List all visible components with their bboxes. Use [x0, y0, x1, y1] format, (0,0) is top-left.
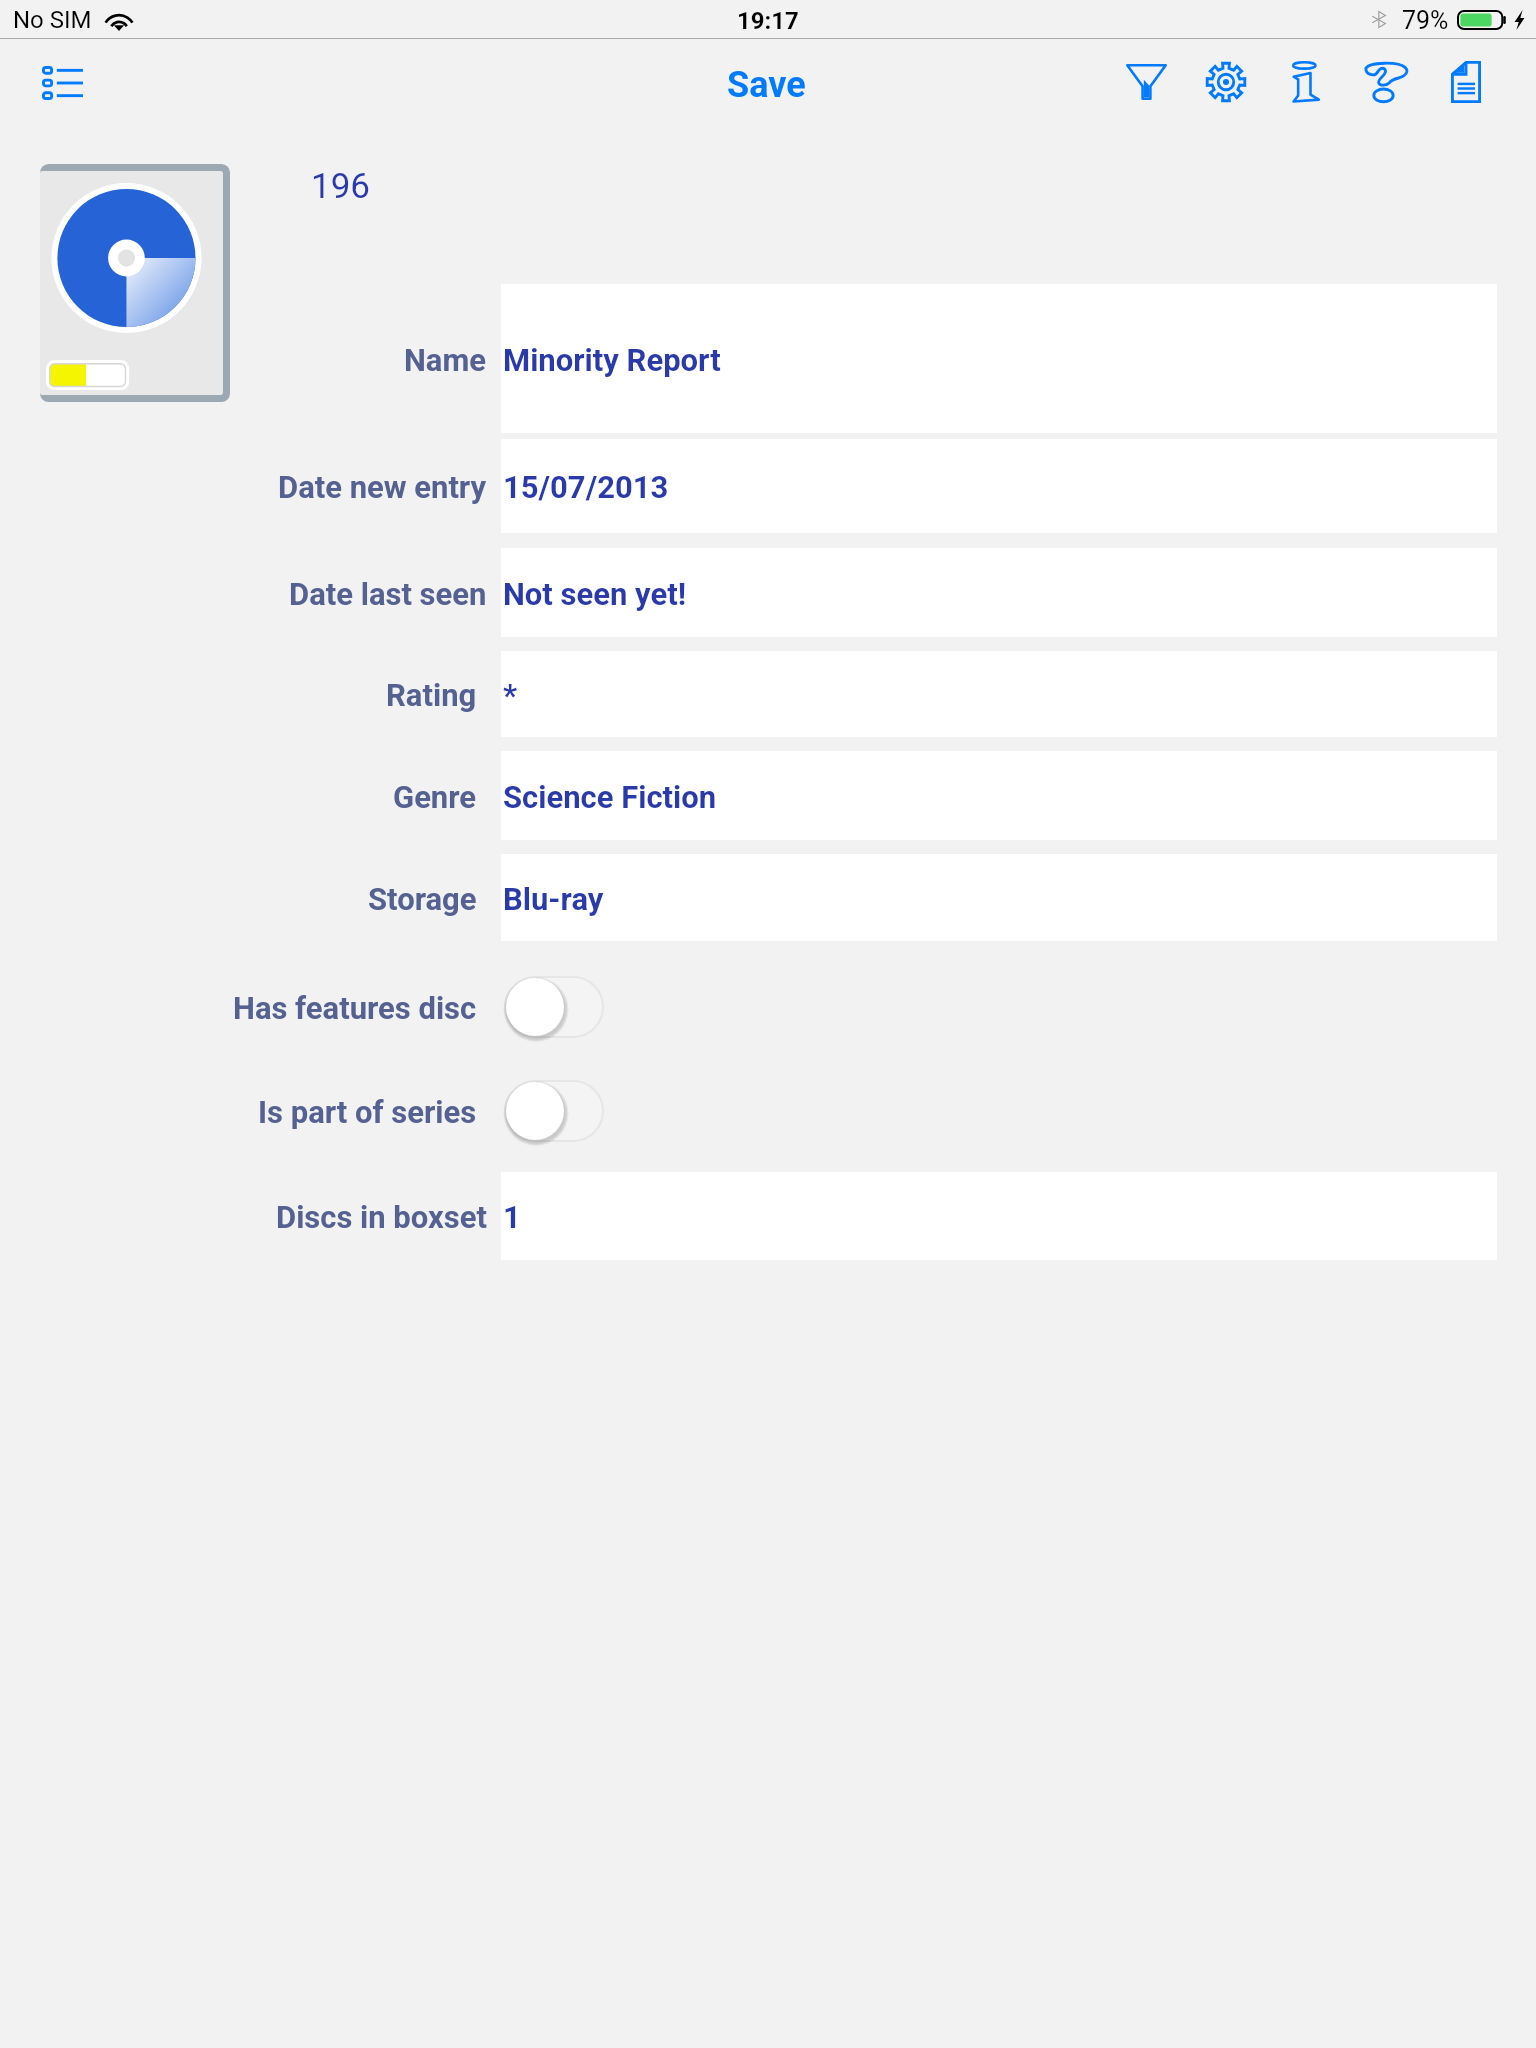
- button[interactable]: Has features disc: [504, 976, 604, 1038]
- button[interactable]: [501, 548, 1497, 637]
- staticText: 19:17: [737, 7, 799, 35]
- staticText: No SIM: [13, 6, 92, 34]
- staticText: 79%: [1402, 6, 1449, 35]
- staticText: Name: [404, 342, 487, 378]
- button[interactable]: Save: [702, 52, 830, 112]
- button[interactable]: Filter: [1108, 49, 1184, 115]
- staticText: 1: [503, 1199, 521, 1235]
- button[interactable]: Info: [1268, 49, 1344, 115]
- button[interactable]: Help: [1348, 49, 1424, 115]
- staticText: Minority Report: [503, 342, 721, 378]
- staticText: Date last seen: [289, 576, 487, 612]
- staticText: Science Fiction: [503, 779, 717, 815]
- button[interactable]: [501, 439, 1497, 533]
- staticText: Genre: [393, 779, 477, 815]
- staticText: Rating: [386, 677, 477, 713]
- button[interactable]: [501, 284, 1497, 433]
- staticText: Save: [727, 64, 806, 106]
- button[interactable]: Settings: [1188, 49, 1264, 115]
- staticText: Date new entry: [278, 469, 487, 505]
- staticText: Discs in boxset: [276, 1199, 487, 1235]
- staticText: Storage: [368, 881, 477, 917]
- button[interactable]: List: [20, 50, 104, 116]
- staticText: *: [503, 677, 518, 713]
- button[interactable]: [501, 854, 1497, 941]
- staticText: Not seen yet!: [503, 576, 687, 612]
- button[interactable]: [501, 1172, 1497, 1260]
- staticText: Blu-ray: [503, 881, 604, 917]
- staticText: 196: [311, 166, 371, 207]
- button[interactable]: [501, 751, 1497, 840]
- staticText: Has features disc: [233, 990, 477, 1026]
- button[interactable]: Is part of series: [504, 1080, 604, 1142]
- button[interactable]: [501, 651, 1497, 737]
- staticText: 15/07/2013: [503, 469, 669, 505]
- staticText: Is part of series: [258, 1094, 477, 1130]
- button[interactable]: Document: [1428, 49, 1504, 115]
